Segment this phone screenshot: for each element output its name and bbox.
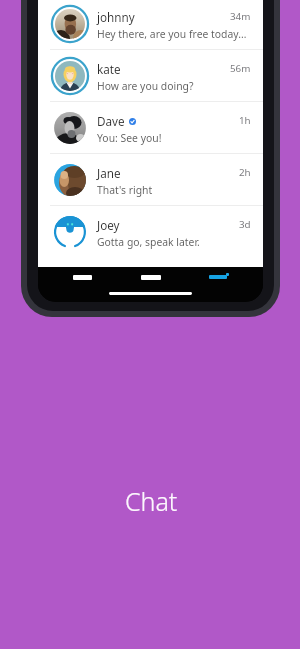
staticText: Jane [97,165,121,181]
staticText: 34m [230,10,251,23]
button[interactable]: Dave [38,102,263,154]
staticText: johnny [97,9,135,25]
button[interactable]: Home [141,275,161,280]
staticText: 3d [239,218,251,231]
button[interactable]: Jane [38,154,263,206]
staticText: Joey [97,217,120,233]
staticText: Hey there, are you free today… [97,27,247,41]
staticText: 1h [239,114,251,127]
staticText: Gotta go, speak later. [97,235,200,249]
staticText: kate [97,61,121,77]
staticText: That's right [97,183,153,197]
button[interactable]: Back [73,275,92,280]
button[interactable]: Joey [38,206,263,258]
button[interactable]: Recent apps [209,273,229,280]
staticText: You: See you! [97,131,162,145]
staticText: Dave [97,113,125,129]
button[interactable]: kate [38,50,263,102]
staticText: 56m [230,62,251,75]
button[interactable]: johnny [38,0,263,50]
staticText: How are you doing? [97,79,194,93]
staticText: 2h [239,166,251,179]
staticText: Chat [125,484,178,518]
